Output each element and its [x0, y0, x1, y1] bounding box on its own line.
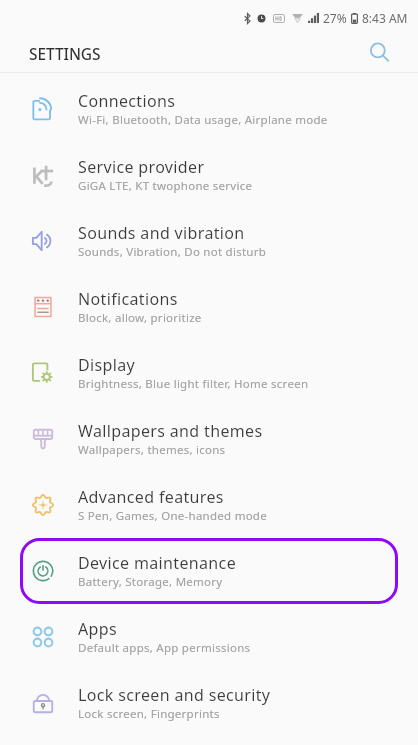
button[interactable]: Apps [0, 604, 418, 670]
staticText: Connections [78, 90, 176, 112]
button[interactable]: Lock screen and security [0, 670, 418, 736]
button[interactable]: Display [0, 340, 418, 406]
staticText: Apps [78, 618, 117, 640]
staticText: Block, allow, prioritize [78, 310, 202, 326]
staticText: Notifications [78, 288, 178, 310]
staticText: Battery, Storage, Memory [78, 574, 223, 590]
staticText: GiGA LTE, KT twophone service [78, 178, 253, 194]
button[interactable]: Service provider [0, 142, 418, 208]
button[interactable]: Search [361, 35, 397, 69]
staticText: S Pen, Games, One-handed mode [78, 508, 267, 524]
staticText: 27% [323, 10, 347, 26]
button[interactable]: Advanced features [0, 472, 418, 538]
staticText: Sounds, Vibration, Do not disturb [78, 244, 267, 260]
staticText: Sounds and vibration [78, 222, 245, 244]
staticText: Wallpapers, themes, icons [78, 442, 226, 458]
staticText: Wi-Fi, Bluetooth, Data usage, Airplane m… [78, 112, 328, 128]
button[interactable]: Wallpapers and themes [0, 406, 418, 472]
staticText: SETTINGS [29, 43, 101, 64]
staticText: Lock screen and security [78, 684, 271, 706]
staticText: Display [78, 354, 136, 376]
button[interactable]: Connections [0, 76, 418, 142]
staticText: Advanced features [78, 486, 224, 508]
staticText: Brightness, Blue light filter, Home scre… [78, 376, 309, 392]
staticText: Wallpapers and themes [78, 420, 263, 442]
staticText: Default apps, App permissions [78, 640, 251, 656]
button[interactable]: Device maintenance [0, 538, 418, 604]
button[interactable]: Notifications [0, 274, 418, 340]
staticText: 8:43 AM [362, 10, 408, 26]
button[interactable]: Sounds and vibration [0, 208, 418, 274]
staticText: Service provider [78, 156, 205, 178]
staticText: Lock screen, Fingerprints [78, 706, 220, 722]
staticText: Device maintenance [78, 552, 237, 574]
